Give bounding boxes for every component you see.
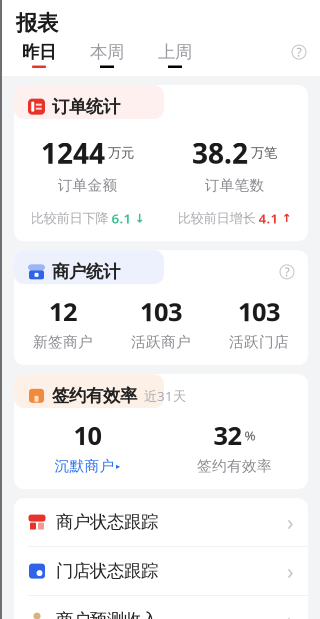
staticText: 1244 — [41, 134, 105, 171]
staticText: 万笔 — [251, 145, 277, 161]
staticText: 12 — [49, 294, 77, 328]
staticText: 沉默商户 — [54, 457, 114, 475]
button[interactable]: 商户预测收入 — [14, 596, 308, 619]
button[interactable]: 商户统计说明 — [280, 265, 294, 279]
staticText: 报表 — [16, 10, 58, 36]
staticText: 商户统计 — [52, 261, 120, 282]
staticText: % — [244, 426, 255, 444]
staticText: 32 — [213, 418, 241, 452]
staticText: 近31天 — [144, 387, 186, 405]
staticText: 103 — [140, 294, 182, 328]
staticText: 本周 — [90, 41, 124, 62]
staticText: 昨日 — [22, 41, 56, 62]
staticText: 订单金额 — [57, 176, 117, 194]
button[interactable]: 本周 — [62, 41, 130, 68]
staticText: 上周 — [158, 41, 192, 62]
button[interactable]: 帮助 — [292, 45, 306, 64]
staticText: 6.1 — [111, 209, 131, 227]
staticText: 签约有效率 — [197, 457, 272, 475]
staticText: 万元 — [108, 145, 134, 161]
staticText: ? — [284, 264, 289, 280]
staticText: ↑ — [281, 211, 291, 225]
button[interactable]: 门店状态跟踪 — [14, 547, 308, 596]
staticText: 38.2 — [192, 134, 248, 171]
staticText: ? — [296, 44, 301, 60]
staticText: › — [287, 508, 294, 536]
staticText: ↓ — [134, 211, 144, 225]
staticText: ▸ — [115, 461, 120, 471]
button[interactable]: 上周 — [130, 41, 198, 68]
button[interactable]: 10 — [14, 418, 161, 475]
staticText: 订单笔数 — [204, 176, 264, 194]
staticText: 商户状态跟踪 — [56, 511, 158, 533]
staticText: 4.1 — [258, 209, 278, 227]
staticText: 比较前日下降 — [30, 210, 108, 227]
staticText: 比较前日增长 — [177, 210, 255, 227]
staticText: 新签商户 — [33, 333, 93, 351]
staticText: 签约有效率 — [52, 385, 137, 406]
staticText: 活跃商户 — [131, 333, 191, 351]
staticText: › — [287, 606, 294, 619]
staticText: › — [287, 557, 294, 585]
button[interactable]: 商户状态跟踪 — [14, 498, 308, 547]
staticText: 10 — [73, 418, 101, 452]
staticText: 门店状态跟踪 — [56, 560, 158, 582]
staticText: 商户预测收入 — [56, 609, 158, 619]
staticText: 103 — [238, 294, 280, 328]
button[interactable]: 昨日 — [16, 41, 62, 68]
staticText: 订单统计 — [52, 96, 120, 117]
staticText: 活跃门店 — [229, 333, 289, 351]
